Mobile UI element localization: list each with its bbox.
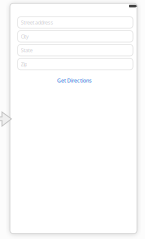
- staticText: Get Directions: [57, 77, 92, 84]
- staticText: Street address: [21, 19, 54, 26]
- staticText: State: [21, 47, 33, 54]
- staticText: Zip: [21, 60, 27, 68]
- staticText: City: [21, 33, 29, 40]
- button[interactable]: Get Directions: [44, 76, 104, 84]
